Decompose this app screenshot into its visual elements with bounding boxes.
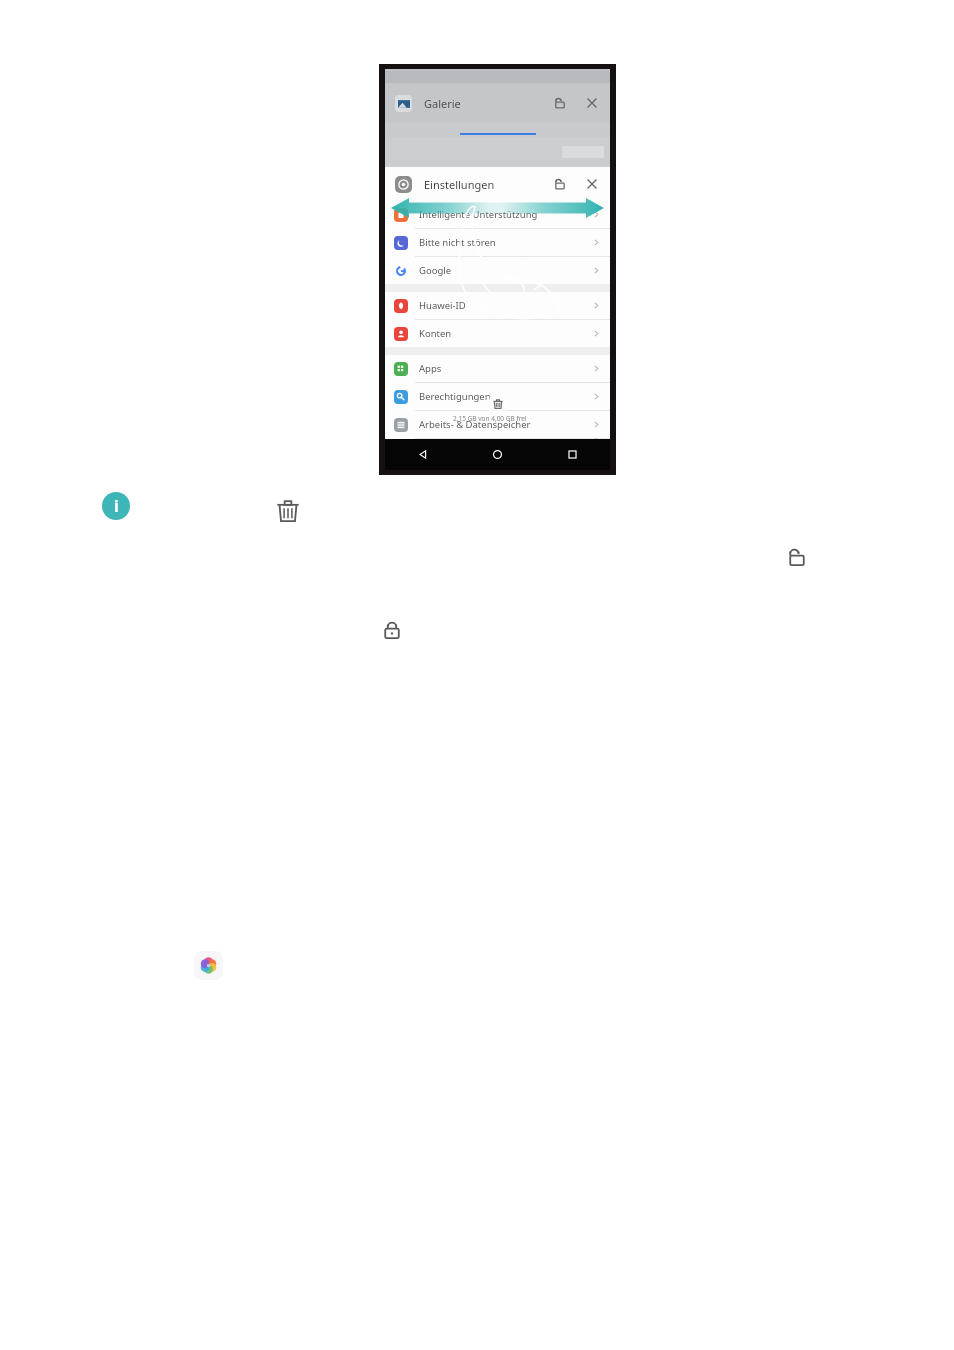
button[interactable]: Berechtigungen bbox=[385, 383, 610, 410]
button[interactable]: Einstellungen bbox=[385, 167, 610, 201]
staticText: 2,15 GB von 4,00 GB frei bbox=[453, 414, 527, 423]
button[interactable]: Arbeits- & Datenspeicher bbox=[385, 411, 610, 438]
staticText: Konten bbox=[419, 327, 452, 340]
staticText: i bbox=[114, 495, 119, 517]
staticText: Google bbox=[419, 264, 452, 277]
button[interactable]: Close Einstellungen bbox=[584, 176, 600, 192]
button[interactable]: Unlock Einstellungen bbox=[552, 176, 568, 192]
staticText: Apps bbox=[419, 362, 442, 375]
button[interactable]: Konten bbox=[385, 320, 610, 347]
button[interactable]: Bitte nicht stören bbox=[385, 229, 610, 256]
staticText: Intelligente Unterstützung bbox=[419, 208, 538, 221]
button[interactable]: Recent apps bbox=[535, 439, 610, 470]
button[interactable]: Lock bbox=[379, 617, 405, 643]
button[interactable]: Delete bbox=[274, 497, 302, 525]
button[interactable]: Back bbox=[385, 439, 460, 470]
staticText: Berechtigungen bbox=[419, 390, 491, 403]
button[interactable]: Apps bbox=[385, 355, 610, 382]
button[interactable]: Unlock bbox=[784, 544, 810, 570]
staticText: Galerie bbox=[424, 96, 461, 111]
staticText: Bitte nicht stören bbox=[419, 236, 496, 249]
button[interactable]: Google bbox=[385, 257, 610, 284]
button[interactable]: Information bbox=[102, 492, 130, 520]
button[interactable]: Huawei-ID bbox=[385, 292, 610, 319]
button[interactable]: Intelligente Unterstützung bbox=[385, 201, 610, 228]
staticText: Arbeits- & Datenspeicher bbox=[419, 418, 531, 431]
button[interactable]: Remove app bbox=[487, 393, 509, 415]
button[interactable]: Galerie bbox=[385, 83, 610, 123]
staticText: Huawei-ID bbox=[419, 299, 466, 312]
button[interactable]: Home bbox=[460, 439, 535, 470]
button[interactable]: Close Galerie bbox=[584, 95, 600, 111]
button[interactable]: Unlock Galerie bbox=[552, 95, 568, 111]
staticText: Einstellungen bbox=[424, 177, 495, 192]
button[interactable]: Gallery app bbox=[194, 951, 223, 980]
